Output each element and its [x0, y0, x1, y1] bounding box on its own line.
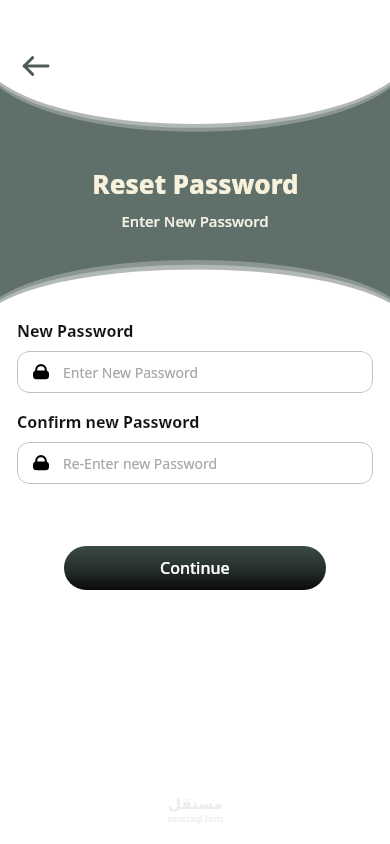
staticText: New Password — [17, 320, 134, 342]
button[interactable]: Back — [14, 44, 58, 88]
staticText: Re-Enter new Password — [63, 454, 218, 473]
button[interactable]: Re-Enter new Password — [17, 442, 373, 484]
staticText: Reset Password — [92, 166, 299, 201]
staticText: Enter New Password — [121, 211, 269, 231]
staticText: mostaql.com — [168, 812, 223, 824]
staticText: مستقل — [168, 795, 223, 812]
staticText: Continue — [160, 557, 230, 579]
button[interactable]: Continue — [64, 546, 326, 590]
button[interactable]: Enter New Password — [17, 351, 373, 393]
staticText: Confirm new Password — [17, 411, 200, 433]
staticText: Enter New Password — [63, 363, 199, 382]
